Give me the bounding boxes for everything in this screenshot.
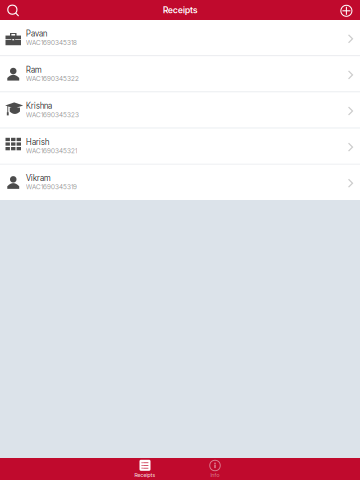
button[interactable]: Search <box>0 0 25 20</box>
button[interactable]: Vikram <box>0 164 360 200</box>
button[interactable]: Pavan <box>0 20 360 56</box>
staticText: WAC1690345319 <box>26 183 77 191</box>
staticText: WAC1690345321 <box>26 147 77 155</box>
staticText: Vikram <box>26 173 51 183</box>
staticText: Pavan <box>26 29 47 38</box>
staticText: Ram <box>26 65 42 75</box>
button[interactable]: Add receipt <box>334 0 360 20</box>
staticText: WAC1690345322 <box>26 75 79 83</box>
button[interactable]: Ram <box>0 56 360 92</box>
button[interactable]: Info <box>180 458 250 480</box>
staticText: Krishna <box>26 101 52 111</box>
staticText: Receipts <box>163 5 197 15</box>
staticText: Info <box>210 472 219 478</box>
button[interactable]: Harish <box>0 128 360 164</box>
button[interactable]: Krishna <box>0 92 360 128</box>
button[interactable]: Receipts <box>110 458 180 480</box>
staticText: Harish <box>26 137 49 147</box>
staticText: WAC1690345318 <box>26 38 77 47</box>
staticText: WAC1690345323 <box>26 111 79 119</box>
staticText: Receipts <box>134 472 155 478</box>
